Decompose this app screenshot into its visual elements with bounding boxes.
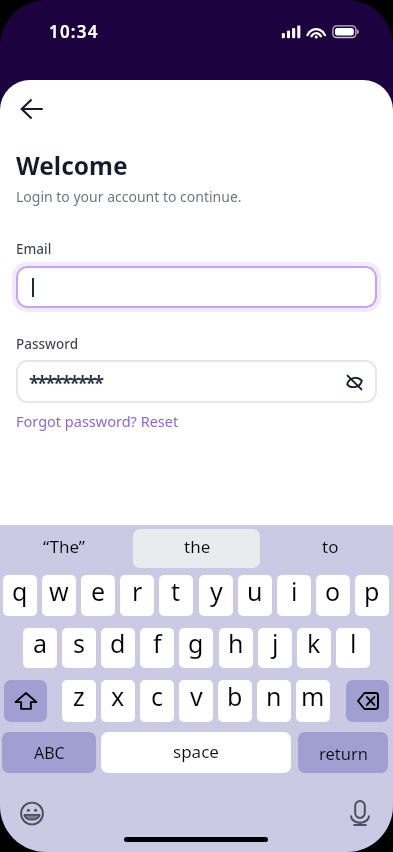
- staticText: “The”: [43, 535, 85, 558]
- button[interactable]: Voice input: [344, 797, 376, 829]
- staticText: return: [319, 742, 368, 764]
- button[interactable]: the: [152, 527, 242, 566]
- button[interactable]: v: [179, 680, 213, 722]
- staticText: b: [227, 680, 243, 713]
- button[interactable]: w: [42, 575, 76, 616]
- button[interactable]: Back: [10, 87, 54, 131]
- button[interactable]: u: [238, 575, 272, 616]
- button[interactable]: a: [23, 628, 57, 668]
- staticText: p: [364, 575, 380, 608]
- button[interactable]: z: [62, 680, 96, 722]
- staticText: d: [110, 628, 126, 660]
- button[interactable]: Shift: [4, 680, 47, 722]
- button[interactable]: “The”: [19, 527, 109, 566]
- staticText: y: [210, 575, 223, 608]
- staticText: s: [73, 628, 85, 660]
- staticText: r: [132, 575, 143, 608]
- staticText: Welcome: [16, 149, 128, 182]
- staticText: Password: [16, 335, 79, 353]
- staticText: v: [190, 680, 203, 713]
- button[interactable]: Backspace: [346, 680, 389, 722]
- button[interactable]: e: [81, 575, 115, 616]
- staticText: o: [325, 575, 341, 608]
- staticText: h: [228, 628, 244, 660]
- button[interactable]: g: [179, 628, 213, 668]
- staticText: j: [272, 628, 279, 660]
- staticText: n: [266, 680, 282, 713]
- button[interactable]: k: [297, 628, 331, 668]
- staticText: z: [73, 680, 85, 713]
- staticText: t: [171, 575, 181, 608]
- button[interactable]: b: [218, 680, 252, 722]
- button[interactable]: f: [140, 628, 174, 668]
- staticText: m: [301, 680, 325, 713]
- button[interactable]: Emoji keyboard: [16, 797, 48, 829]
- button[interactable]: t: [159, 575, 193, 616]
- button[interactable]: [16, 266, 377, 308]
- staticText: f: [153, 628, 162, 660]
- button[interactable]: s: [62, 628, 96, 668]
- staticText: *********: [29, 370, 102, 396]
- button[interactable]: n: [257, 680, 291, 722]
- staticText: 10:34: [49, 20, 99, 43]
- button[interactable]: l: [336, 628, 370, 668]
- staticText: i: [291, 575, 298, 608]
- staticText: space: [173, 740, 219, 763]
- button[interactable]: Forgot password? Reset: [16, 411, 179, 431]
- staticText: to: [322, 535, 339, 558]
- staticText: k: [307, 628, 321, 660]
- button[interactable]: h: [219, 628, 253, 668]
- staticText: c: [151, 680, 164, 713]
- staticText: u: [247, 575, 263, 608]
- button[interactable]: Toggle password visibility: [337, 365, 371, 399]
- button[interactable]: return: [298, 732, 388, 773]
- button[interactable]: q: [3, 575, 37, 616]
- button[interactable]: x: [101, 680, 135, 722]
- staticText: ABC: [34, 742, 65, 764]
- button[interactable]: to: [285, 527, 375, 566]
- button[interactable]: d: [101, 628, 135, 668]
- staticText: Login to your account to continue.: [16, 187, 242, 206]
- button[interactable]: m: [296, 680, 330, 722]
- button[interactable]: i: [277, 575, 311, 616]
- button[interactable]: p: [355, 575, 389, 616]
- staticText: x: [111, 680, 125, 713]
- staticText: Email: [16, 240, 52, 258]
- button[interactable]: r: [120, 575, 154, 616]
- button[interactable]: j: [258, 628, 292, 668]
- button[interactable]: ABC: [2, 732, 96, 773]
- button[interactable]: c: [140, 680, 174, 722]
- button[interactable]: o: [316, 575, 350, 616]
- button[interactable]: y: [199, 575, 233, 616]
- staticText: w: [49, 575, 69, 608]
- staticText: l: [350, 628, 357, 660]
- staticText: a: [33, 628, 48, 660]
- button[interactable]: [133, 529, 260, 568]
- staticText: e: [91, 575, 106, 608]
- staticText: the: [184, 535, 211, 558]
- staticText: q: [12, 575, 28, 608]
- staticText: g: [188, 628, 204, 660]
- button[interactable]: space: [101, 732, 291, 773]
- button[interactable]: *********: [16, 360, 377, 403]
